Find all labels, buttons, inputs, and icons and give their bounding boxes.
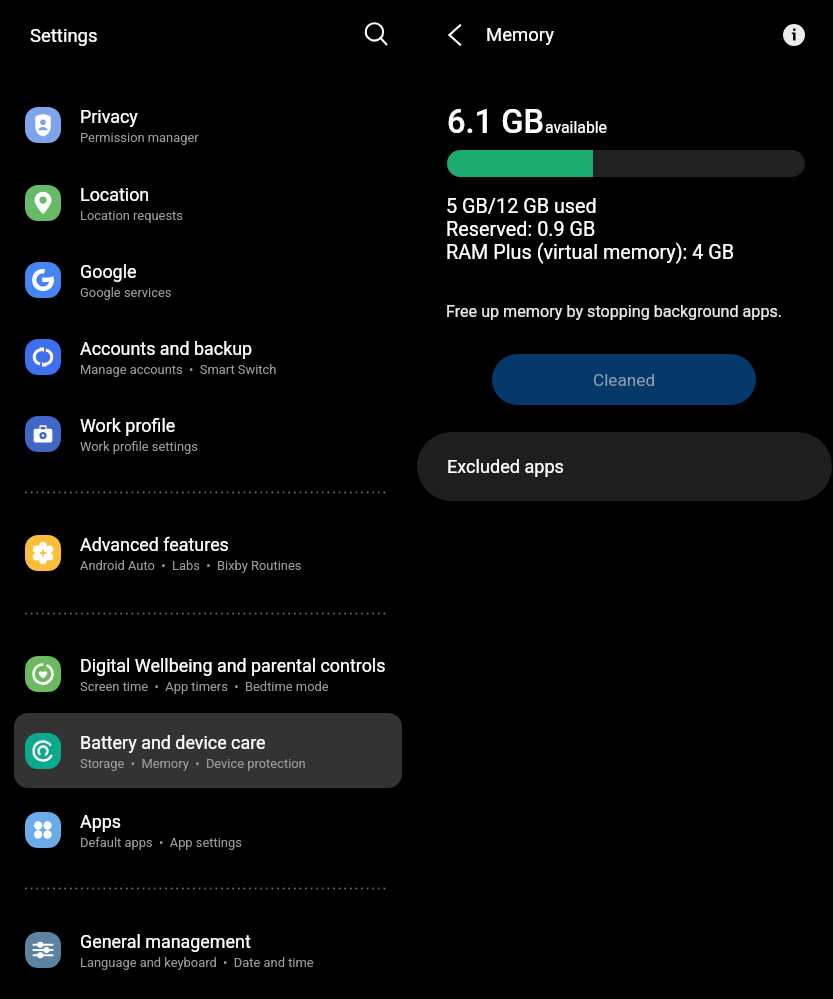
- staticText: Digital Wellbeing and parental controls: [80, 655, 386, 676]
- button[interactable]: Memory: [480, 10, 570, 60]
- staticText: Accounts and backup: [80, 338, 253, 359]
- button[interactable]: Privacy: [14, 88, 402, 162]
- staticText: Privacy: [80, 106, 138, 127]
- staticText: Memory: [486, 24, 554, 46]
- staticText: Free up memory by stopping background ap…: [446, 302, 783, 321]
- staticText: Permission manager: [80, 130, 199, 145]
- button[interactable]: Work profile: [14, 397, 402, 471]
- staticText: Work profile settings: [80, 439, 198, 454]
- staticText: Android Auto • Labs • Bixby Routines: [80, 558, 302, 573]
- staticText: Location: [80, 184, 150, 205]
- button[interactable]: Excluded apps: [417, 432, 832, 501]
- button[interactable]: Search: [355, 13, 397, 55]
- button[interactable]: Back: [435, 15, 475, 55]
- staticText: Settings: [30, 25, 98, 47]
- staticText: Cleaned: [593, 370, 656, 390]
- staticText: 5 GB/12 GB used: [446, 195, 597, 218]
- staticText: Language and keyboard • Date and time: [80, 955, 314, 970]
- staticText: Location requests: [80, 208, 183, 223]
- staticText: Apps: [80, 811, 121, 832]
- button[interactable]: Google: [14, 243, 402, 317]
- staticText: available: [545, 118, 607, 137]
- button[interactable]: Digital Wellbeing and parental controls: [14, 637, 402, 711]
- button[interactable]: Location: [14, 166, 402, 240]
- button[interactable]: Advanced features: [14, 516, 402, 590]
- button[interactable]: Accounts and backup: [14, 320, 402, 394]
- staticText: Default apps • App settings: [80, 835, 242, 850]
- staticText: Advanced features: [80, 534, 229, 555]
- staticText: Work profile: [80, 415, 176, 436]
- staticText: 6.1 GB: [447, 103, 544, 141]
- button[interactable]: General management: [14, 913, 402, 987]
- staticText: Battery and device care: [80, 732, 266, 753]
- staticText: Storage • Memory • Device protection: [80, 756, 306, 771]
- staticText: Excluded apps: [447, 456, 564, 477]
- button[interactable]: Apps: [14, 793, 402, 867]
- button[interactable]: Battery and device care: [14, 714, 402, 788]
- staticText: Reserved: 0.9 GB: [446, 218, 596, 241]
- staticText: RAM Plus (virtual memory): 4 GB: [446, 241, 735, 264]
- staticText: Google services: [80, 285, 172, 300]
- staticText: Screen time • App timers • Bedtime mode: [80, 679, 329, 694]
- staticText: General management: [80, 931, 251, 952]
- staticText: Google: [80, 261, 137, 282]
- button[interactable]: Info: [773, 14, 815, 56]
- staticText: Manage accounts • Smart Switch: [80, 362, 277, 377]
- button[interactable]: Cleaned: [492, 354, 756, 405]
- button[interactable]: Settings: [10, 10, 120, 62]
